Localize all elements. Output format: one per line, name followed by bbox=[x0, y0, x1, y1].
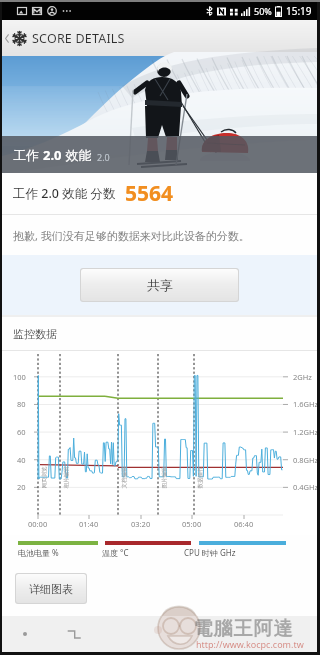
staticText: 2.0 bbox=[97, 151, 110, 163]
staticText: 1.2GHz bbox=[293, 427, 319, 437]
staticText: 00:00 bbox=[28, 519, 48, 529]
staticText: 電腦王阿達 bbox=[193, 617, 293, 641]
staticText: 06:40 bbox=[234, 519, 254, 529]
button[interactable]: 详细图表 bbox=[16, 574, 86, 603]
staticText: CPU 时钟 GHz bbox=[184, 547, 236, 558]
button[interactable]: Back bbox=[2, 20, 12, 56]
staticText: 效能 bbox=[62, 146, 92, 164]
staticText: 网页浏览 bbox=[40, 466, 47, 488]
staticText: 80 bbox=[17, 399, 26, 409]
staticText: 工作 2.0 效能 分数 bbox=[13, 185, 116, 202]
staticText: 50% bbox=[254, 5, 272, 17]
staticText: 5564 bbox=[125, 179, 174, 208]
staticText: 20 bbox=[17, 482, 26, 492]
staticText: 文档编辑 bbox=[120, 466, 127, 488]
staticText: 15:19 bbox=[286, 4, 312, 18]
staticText: SCORE DETAILS bbox=[32, 30, 125, 47]
staticText: 0.4GHz bbox=[293, 482, 319, 492]
staticText: 电池电量 % bbox=[18, 547, 59, 558]
staticText: 图片编辑 bbox=[160, 466, 167, 488]
staticText: 数据操作 bbox=[196, 466, 203, 488]
staticText: 100 bbox=[13, 372, 26, 382]
staticText: 相片编辑 bbox=[62, 466, 69, 488]
staticText: 2GHz bbox=[293, 372, 312, 382]
staticText: 共享 bbox=[147, 277, 173, 293]
button[interactable]: Back bbox=[48, 616, 100, 652]
staticText: 0.8GHz bbox=[293, 455, 319, 465]
staticText: 工作 bbox=[13, 146, 43, 164]
staticText: 温度 °C bbox=[102, 547, 129, 558]
staticText: 抱歉, 我们没有足够的数据来对比此设备的分数。 bbox=[13, 228, 250, 243]
staticText: 01:40 bbox=[79, 519, 99, 529]
staticText: 1.6GHz bbox=[293, 399, 319, 409]
staticText: 详细图表 bbox=[29, 582, 73, 596]
staticText: 2.0 bbox=[43, 146, 62, 164]
staticText: 监控数据 bbox=[13, 327, 57, 341]
staticText: 60 bbox=[17, 427, 26, 437]
staticText: http://www.kocpc.com.tw bbox=[196, 638, 304, 650]
staticText: 05:00 bbox=[182, 519, 202, 529]
button[interactable]: Recents bbox=[2, 616, 48, 652]
staticText: 40 bbox=[17, 455, 26, 465]
staticText: 03:20 bbox=[131, 519, 151, 529]
button[interactable]: 共享 bbox=[81, 269, 238, 301]
